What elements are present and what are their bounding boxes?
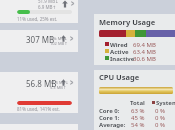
other: Network details bbox=[60, 35, 67, 42]
other: Open details bbox=[69, 80, 74, 85]
staticText: 45 % bbox=[131, 114, 145, 122]
other: Network details bbox=[60, 79, 67, 86]
staticText: 54 % bbox=[131, 121, 145, 129]
staticText: 30.6 MB bbox=[133, 55, 156, 63]
staticText: Wired bbox=[110, 41, 128, 49]
staticText: CPU Usage bbox=[99, 72, 140, 82]
staticText: 307 MB bbox=[26, 34, 55, 45]
button[interactable]: 307 MB bbox=[0, 30, 78, 52]
staticText: 11% used, 25% est. bbox=[17, 16, 58, 22]
staticText: Memory Usage bbox=[99, 17, 156, 27]
staticText: 6.9 MB↑ bbox=[38, 4, 57, 10]
staticText: Total bbox=[130, 99, 145, 107]
staticText: Core 1: bbox=[99, 114, 120, 122]
staticText: System bbox=[156, 99, 175, 107]
staticText: 20k MB↓ bbox=[50, 36, 68, 41]
staticText: 0 % bbox=[155, 121, 165, 129]
other: Open details bbox=[69, 36, 74, 41]
other: Network details bbox=[61, 0, 69, 8]
button[interactable]: 56.8 MB bbox=[0, 72, 78, 113]
staticText: 63.4 MB bbox=[133, 48, 156, 56]
other: Open details bbox=[70, 1, 75, 6]
staticText: 102 MB↑ bbox=[50, 41, 68, 46]
staticText: 56.8 MB bbox=[26, 78, 57, 89]
staticText: Active bbox=[110, 48, 129, 56]
staticText: 51.9 MB↓ bbox=[38, 0, 59, 4]
staticText: 5.3 MB↑ bbox=[50, 85, 67, 90]
staticText: 91.5 MB↓ bbox=[50, 80, 69, 85]
staticText: Inactive bbox=[110, 55, 135, 63]
staticText: Core 0: bbox=[99, 107, 120, 115]
staticText: 63 % bbox=[131, 107, 145, 115]
button[interactable]: 51.9 MB↓ bbox=[0, 0, 78, 23]
staticText: 0 % bbox=[155, 114, 165, 122]
staticText: 69.4 MB bbox=[133, 41, 156, 49]
staticText: 81% used, 141% est. bbox=[17, 106, 60, 112]
staticText: Average: bbox=[99, 121, 126, 129]
staticText: 0 % bbox=[155, 107, 165, 115]
